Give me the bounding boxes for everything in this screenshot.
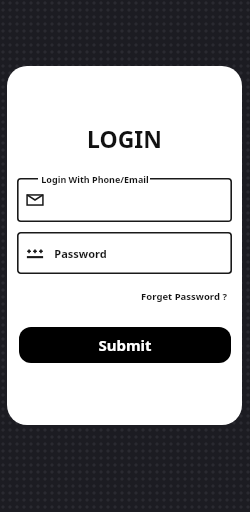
staticText: Forget Password ? [141, 290, 227, 303]
other: Email [26, 191, 44, 209]
other: Password [26, 246, 44, 260]
button[interactable]: Password [17, 232, 232, 274]
staticText: LOGIN [87, 123, 162, 154]
staticText: Login With Phone/Email [41, 173, 149, 185]
staticText: Submit [98, 335, 152, 355]
button[interactable]: Email [17, 178, 232, 222]
button[interactable]: Submit [19, 327, 231, 363]
staticText: Password [54, 246, 107, 261]
button[interactable]: Forget Password ? [139, 288, 229, 305]
